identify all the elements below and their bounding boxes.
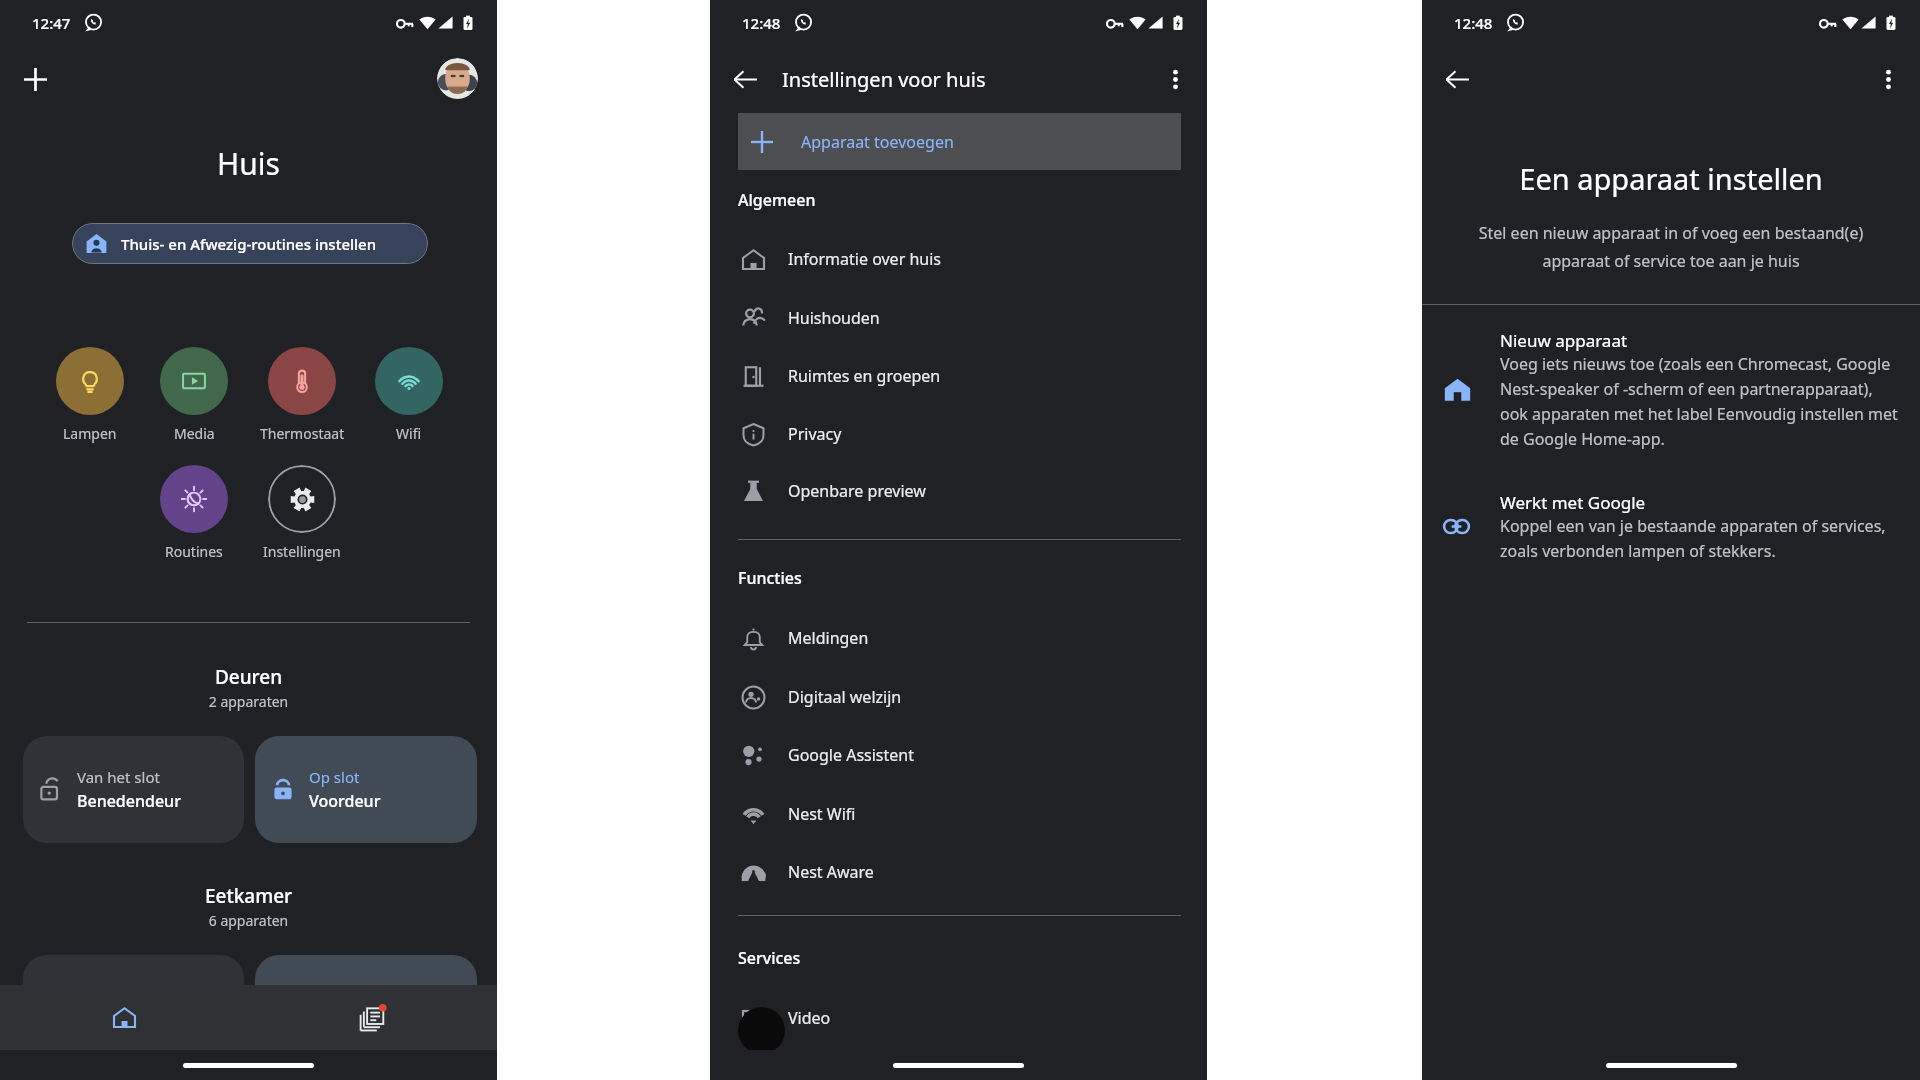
- button[interactable]: Van het slot: [23, 736, 244, 843]
- staticText: Huis: [0, 143, 497, 184]
- staticText: Thermostaat: [260, 424, 345, 443]
- button[interactable]: [23, 955, 244, 1062]
- staticText: 12:48: [1454, 13, 1493, 33]
- staticText: Lampen: [63, 424, 117, 443]
- staticText: Voeg iets nieuws toe (zoals een Chromeca…: [1500, 353, 1904, 449]
- staticText: Stel een nieuw apparaat in of voeg een b…: [1446, 222, 1896, 272]
- button[interactable]: Meldingen: [710, 609, 1207, 667]
- staticText: Privacy: [788, 423, 842, 445]
- button[interactable]: Op slot: [255, 736, 477, 843]
- staticText: Nest Aware: [788, 861, 874, 883]
- button[interactable]: Instellingen: [268, 465, 336, 533]
- button[interactable]: Digitaal welzijn: [710, 668, 1207, 726]
- button[interactable]: Nest Wifi: [710, 785, 1207, 843]
- button[interactable]: [255, 955, 477, 1062]
- staticText: 12:48: [742, 13, 781, 33]
- staticText: Video: [788, 1007, 831, 1029]
- button[interactable]: Apparaat toevoegen: [738, 113, 1181, 170]
- staticText: Routines: [165, 542, 223, 561]
- staticText: Ruimtes en groepen: [788, 365, 941, 387]
- staticText: Google Assistent: [788, 744, 914, 766]
- button[interactable]: Werkt met Google: [1422, 484, 1920, 580]
- button[interactable]: Video: [710, 989, 1207, 1047]
- button[interactable]: Thermostaat: [268, 347, 336, 415]
- button[interactable]: Openbare preview: [710, 462, 1207, 520]
- button[interactable]: Home: [0, 985, 248, 1050]
- staticText: Wifi: [396, 424, 422, 443]
- button[interactable]: Nest Aware: [710, 843, 1207, 901]
- staticText: Instellingen voor huis: [782, 66, 986, 93]
- button[interactable]: Add: [13, 57, 57, 101]
- staticText: Algemeen: [738, 189, 816, 211]
- staticText: Meldingen: [788, 627, 869, 649]
- staticText: Eetkamer: [0, 883, 497, 909]
- staticText: Instellingen: [263, 542, 341, 561]
- button[interactable]: Nieuw apparaat: [1422, 322, 1920, 465]
- staticText: Services: [738, 947, 801, 969]
- staticText: Nieuw apparaat: [1500, 329, 1628, 352]
- button[interactable]: Informatie over huis: [710, 230, 1207, 288]
- staticText: Voordeur: [309, 790, 381, 812]
- button[interactable]: Account: [437, 58, 478, 99]
- button[interactable]: More options: [1866, 57, 1910, 101]
- button[interactable]: Ruimtes en groepen: [710, 347, 1207, 405]
- staticText: Op slot: [309, 767, 360, 787]
- staticText: Van het slot: [77, 767, 160, 787]
- staticText: 12:47: [32, 13, 71, 33]
- staticText: Koppel een van je bestaande apparaten of…: [1500, 515, 1904, 561]
- staticText: Apparaat toevoegen: [801, 131, 954, 153]
- staticText: Functies: [738, 567, 802, 589]
- staticText: Digitaal welzijn: [788, 686, 902, 708]
- staticText: Werkt met Google: [1500, 491, 1646, 514]
- staticText: Deuren: [0, 664, 497, 690]
- staticText: Huishouden: [788, 307, 880, 329]
- button[interactable]: Huishouden: [710, 289, 1207, 347]
- staticText: Een apparaat instellen: [1422, 159, 1920, 198]
- staticText: 6 apparaten: [0, 911, 497, 930]
- button[interactable]: Feed: [248, 985, 497, 1050]
- staticText: Informatie over huis: [788, 248, 941, 270]
- staticText: Benedendeur: [77, 790, 181, 812]
- staticText: Openbare preview: [788, 480, 926, 502]
- button[interactable]: Routines: [160, 465, 228, 533]
- button[interactable]: Google Assistent: [710, 726, 1207, 784]
- button[interactable]: Back: [1435, 57, 1479, 101]
- button[interactable]: More options: [1153, 57, 1197, 101]
- button[interactable]: Thuis- en Afwezig-routines instellen: [72, 223, 428, 264]
- staticText: Nest Wifi: [788, 803, 856, 825]
- button[interactable]: Back: [723, 57, 767, 101]
- staticText: Media: [174, 424, 215, 443]
- staticText: Thuis- en Afwezig-routines instellen: [121, 234, 377, 254]
- staticText: 2 apparaten: [0, 692, 497, 711]
- button[interactable]: Media: [160, 347, 228, 415]
- button[interactable]: Lampen: [56, 347, 124, 415]
- button[interactable]: Privacy: [710, 405, 1207, 463]
- button[interactable]: Wifi: [375, 347, 443, 415]
